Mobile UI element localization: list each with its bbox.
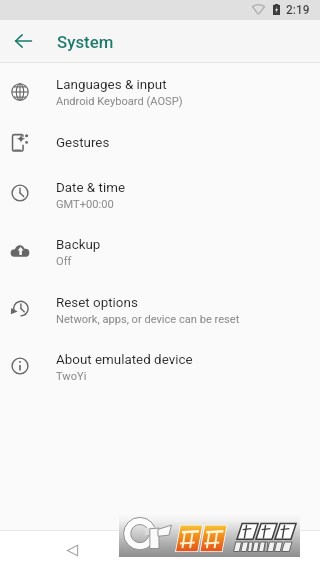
- staticText: Reset options: [56, 295, 138, 311]
- button[interactable]: Gestures: [0, 121, 320, 166]
- button[interactable]: Navigate up: [7, 24, 40, 57]
- staticText: Network, apps, or device can be reset: [56, 313, 240, 326]
- button[interactable]: Languages & input: [0, 63, 320, 121]
- staticText: TwoYi: [56, 370, 87, 383]
- staticText: Android Keyboard (AOSP): [56, 95, 183, 108]
- button[interactable]: Back: [56, 534, 88, 566]
- button[interactable]: Date & time: [0, 166, 320, 224]
- button[interactable]: About emulated device: [0, 338, 320, 396]
- staticText: 2:19: [286, 3, 310, 17]
- button[interactable]: Reset options: [0, 281, 320, 338]
- staticText: Off: [56, 255, 72, 268]
- staticText: About emulated device: [56, 352, 193, 368]
- staticText: GMT+00:00: [56, 198, 114, 211]
- staticText: Date & time: [56, 180, 126, 196]
- staticText: Backup: [56, 237, 101, 253]
- button[interactable]: Backup: [0, 224, 320, 281]
- staticText: System: [57, 32, 114, 52]
- staticText: Languages & input: [56, 77, 167, 93]
- staticText: Gestures: [56, 135, 110, 151]
